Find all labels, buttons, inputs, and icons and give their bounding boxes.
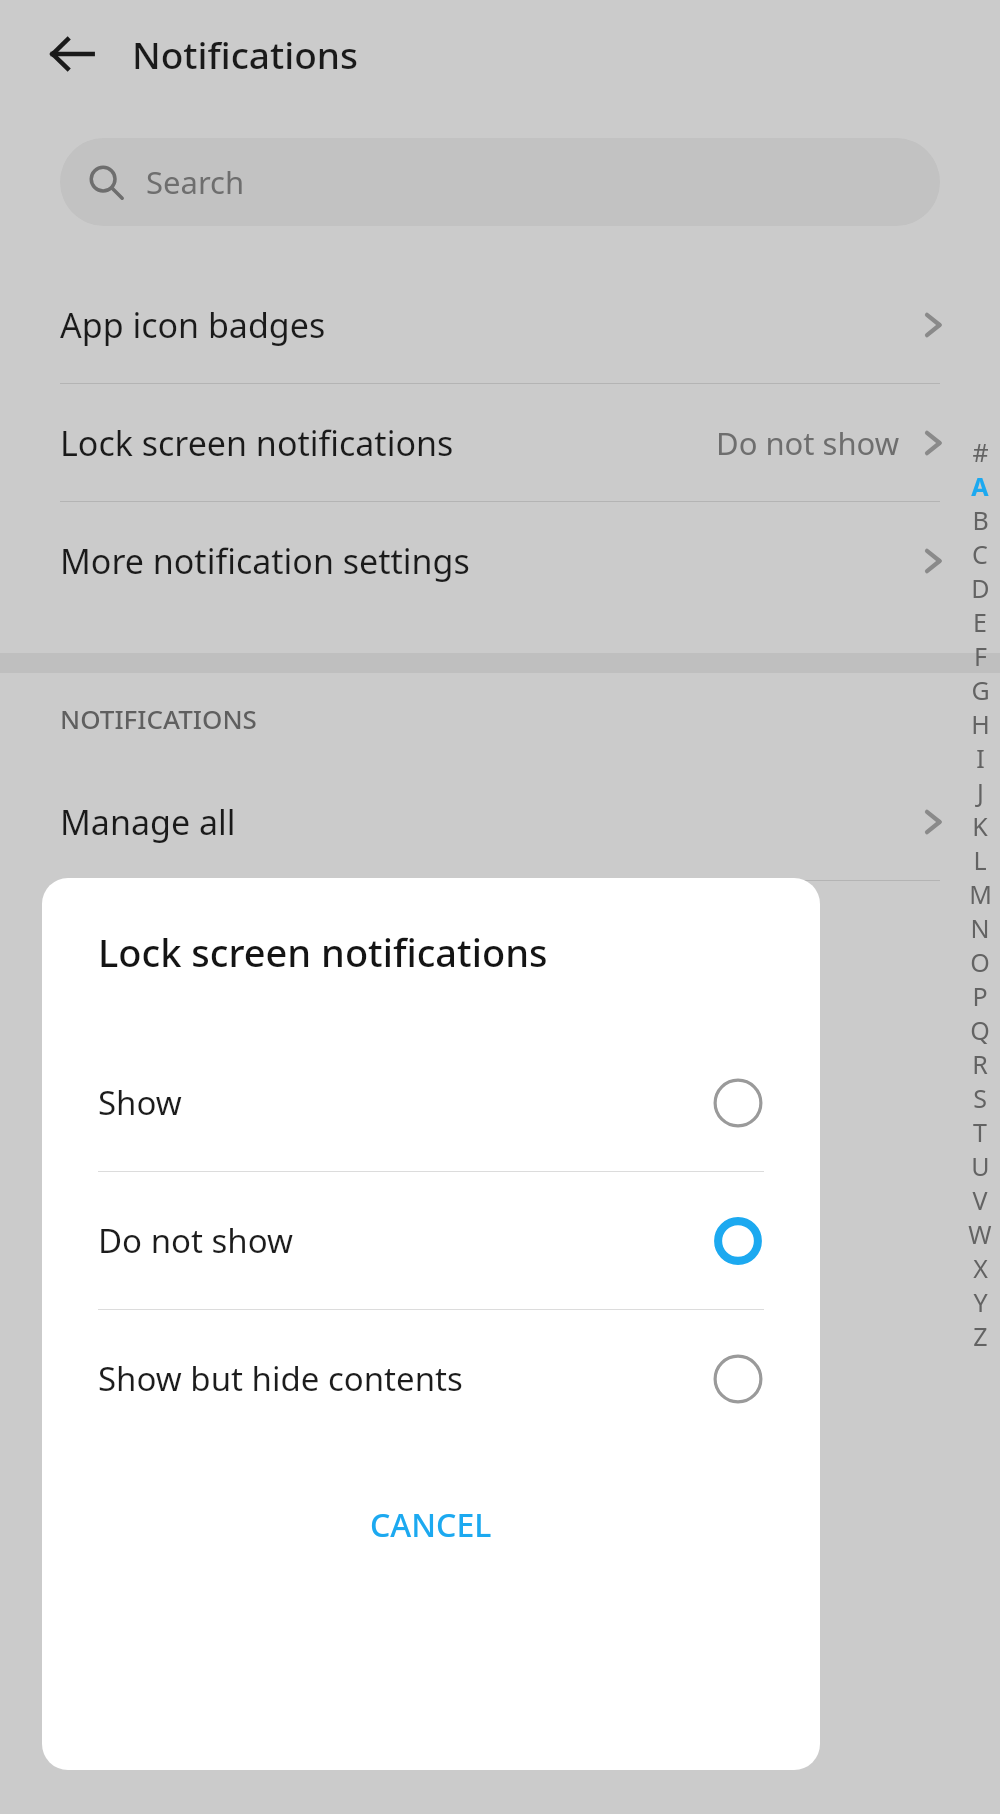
staticText: X: [973, 1251, 988, 1285]
staticText: I: [976, 741, 985, 775]
staticText: O: [970, 945, 990, 979]
staticText: U: [971, 1149, 990, 1183]
staticText: A: [971, 469, 989, 503]
staticText: F: [974, 639, 987, 673]
staticText: C: [972, 537, 988, 571]
button[interactable]: Alphabet index: [960, 435, 1000, 1353]
button[interactable]: CANCEL: [334, 1485, 528, 1565]
staticText: S: [973, 1081, 987, 1115]
staticText: Z: [973, 1319, 988, 1353]
staticText: N: [970, 911, 990, 945]
button[interactable]: Lock screen notifications: [0, 384, 1000, 501]
button[interactable]: Do not show: [42, 1172, 820, 1309]
staticText: #: [972, 435, 989, 469]
staticText: B: [972, 503, 989, 537]
staticText: App icon badges: [60, 302, 326, 348]
staticText: Do not show: [716, 422, 900, 464]
staticText: Do not show: [98, 1218, 293, 1263]
staticText: J: [977, 775, 984, 809]
button[interactable]: Show but hide contents: [42, 1310, 820, 1447]
staticText: K: [972, 809, 988, 843]
button[interactable]: Manage all: [0, 763, 1000, 880]
staticText: G: [971, 673, 990, 707]
staticText: Search: [146, 161, 245, 203]
staticText: P: [972, 979, 988, 1013]
staticText: Y: [973, 1285, 988, 1319]
staticText: R: [972, 1047, 988, 1081]
staticText: D: [971, 571, 990, 605]
button[interactable]: Show: [42, 1034, 820, 1171]
staticText: Show but hide contents: [98, 1356, 463, 1401]
staticText: M: [969, 877, 992, 911]
staticText: V: [972, 1183, 988, 1217]
button[interactable]: More notification settings: [0, 502, 1000, 619]
button[interactable]: Search: [60, 138, 940, 226]
staticText: Lock screen notifications: [60, 420, 454, 466]
button[interactable]: App icon badges: [0, 266, 1000, 383]
staticText: CANCEL: [370, 1503, 492, 1547]
staticText: Lock screen notifications: [98, 926, 548, 978]
staticText: W: [968, 1217, 992, 1251]
staticText: Show: [98, 1080, 182, 1125]
staticText: T: [973, 1115, 987, 1149]
staticText: NOTIFICATIONS: [60, 701, 257, 736]
button[interactable]: Back: [40, 22, 104, 86]
staticText: Manage all: [60, 799, 236, 845]
staticText: Notifications: [132, 29, 358, 79]
staticText: E: [973, 605, 987, 639]
staticText: More notification settings: [60, 538, 470, 584]
staticText: L: [973, 843, 987, 877]
staticText: H: [971, 707, 990, 741]
staticText: Q: [970, 1013, 990, 1047]
